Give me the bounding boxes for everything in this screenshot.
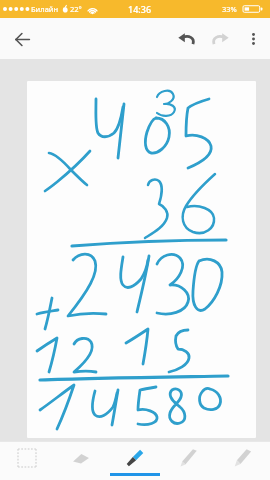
button[interactable]: More options: [240, 26, 266, 52]
staticText: Билайн: [31, 4, 59, 14]
button[interactable]: Select: [0, 441, 54, 480]
button[interactable]: Undo: [171, 24, 201, 54]
button[interactable]: Redo: [205, 24, 235, 54]
staticText: 14:36: [128, 3, 152, 15]
button[interactable]: Pencil: [162, 441, 216, 480]
staticText: 33%: [222, 4, 237, 14]
button[interactable]: Marker: [216, 441, 270, 480]
button[interactable]: Eraser: [54, 441, 108, 480]
staticText: 22°: [70, 4, 82, 14]
button[interactable]: Back: [7, 24, 37, 54]
button[interactable]: Pen: [108, 441, 162, 480]
